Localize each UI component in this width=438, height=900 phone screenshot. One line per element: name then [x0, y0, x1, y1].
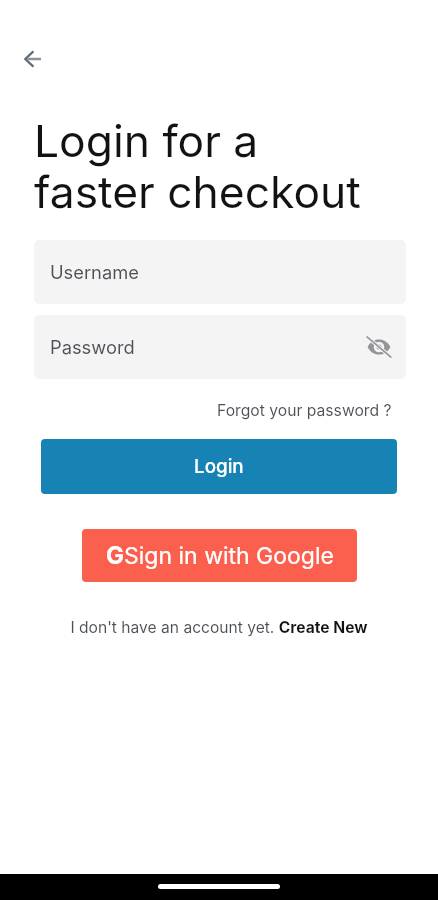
staticText: Login: [194, 455, 244, 478]
staticText: Username: [50, 261, 139, 283]
button[interactable]: Forgot your password ?: [217, 401, 392, 420]
button[interactable]: Login: [41, 439, 397, 494]
button[interactable]: Show password: [362, 330, 396, 364]
button[interactable]: GSign in with Google: [82, 529, 357, 582]
button[interactable]: Back: [12, 39, 52, 79]
button[interactable]: I don't have an account yet. Create New: [70, 618, 368, 637]
button[interactable]: Username: [34, 240, 406, 304]
staticText: Login for a faster checkout: [34, 114, 361, 219]
button[interactable]: Password: [34, 315, 406, 379]
staticText: Password: [50, 336, 135, 358]
staticText: GSign in with Google: [106, 541, 334, 570]
staticText: Forgot your password ?: [217, 401, 392, 420]
